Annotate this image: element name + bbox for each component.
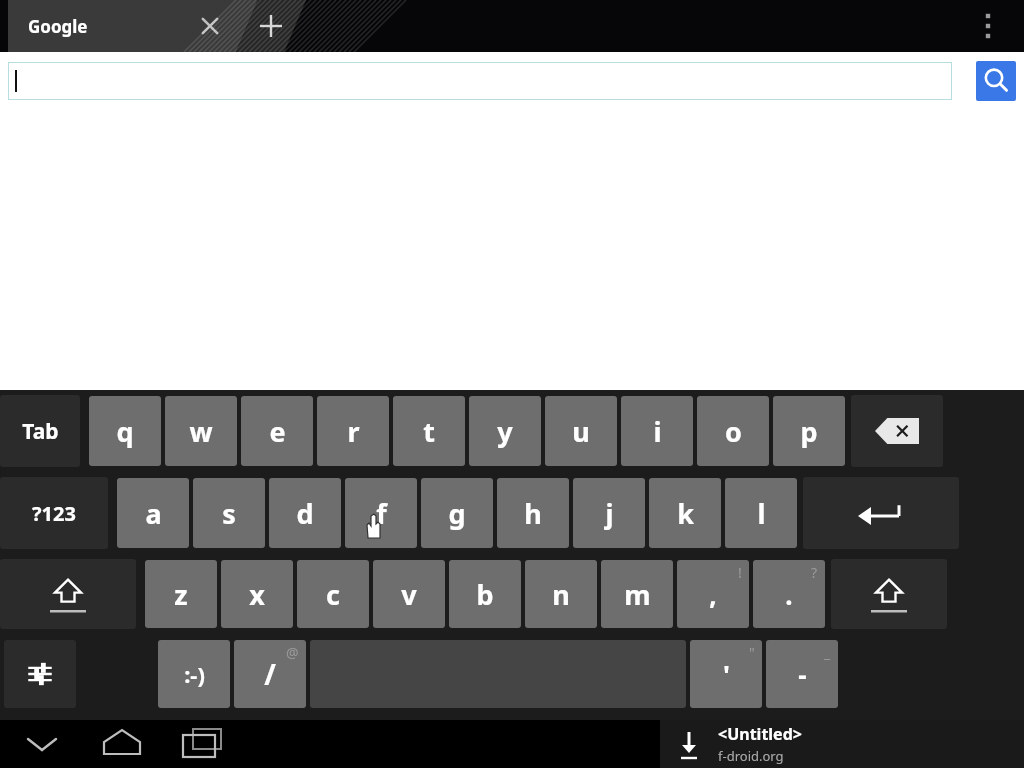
staticText: e bbox=[269, 413, 286, 450]
button[interactable]: e bbox=[241, 396, 313, 466]
staticText: b bbox=[476, 576, 494, 613]
button[interactable]: z bbox=[145, 560, 217, 628]
button[interactable]: . bbox=[753, 560, 825, 628]
button[interactable]: l bbox=[725, 478, 797, 548]
button[interactable]: m bbox=[601, 560, 673, 628]
staticText: ! bbox=[738, 563, 742, 582]
button[interactable]: t bbox=[393, 396, 465, 466]
button[interactable]: h bbox=[497, 478, 569, 548]
staticText: ? bbox=[811, 563, 818, 582]
staticText: ?123 bbox=[32, 500, 76, 527]
staticText: f-droid.org bbox=[718, 747, 784, 765]
button[interactable]: Hide keyboard bbox=[14, 722, 70, 766]
staticText: r bbox=[347, 413, 360, 450]
button[interactable]: Close tab bbox=[192, 8, 228, 44]
staticText: d bbox=[296, 495, 314, 532]
button[interactable]: <Untitled> bbox=[660, 720, 1024, 768]
button[interactable]: Google bbox=[8, 0, 236, 52]
button[interactable]: c bbox=[297, 560, 369, 628]
button[interactable]: - bbox=[766, 640, 838, 708]
button[interactable]: f bbox=[345, 478, 417, 548]
button[interactable]: o bbox=[697, 396, 769, 466]
button[interactable]: Shift bbox=[831, 559, 947, 629]
button[interactable]: k bbox=[649, 478, 721, 548]
button[interactable]: s bbox=[193, 478, 265, 548]
staticText: ' bbox=[723, 657, 730, 692]
button[interactable]: r bbox=[317, 396, 389, 466]
staticText: q bbox=[116, 413, 134, 450]
staticText: g bbox=[448, 495, 466, 532]
staticText: v bbox=[401, 576, 417, 613]
button[interactable]: Home bbox=[94, 722, 150, 766]
button[interactable]: Recent apps bbox=[174, 722, 230, 766]
button[interactable]: Backspace bbox=[851, 395, 943, 467]
staticText: z bbox=[174, 576, 188, 613]
staticText: l bbox=[757, 495, 766, 532]
button[interactable]: i bbox=[621, 396, 693, 466]
staticText: . bbox=[785, 577, 793, 612]
staticText: i bbox=[653, 413, 662, 450]
button[interactable]: / bbox=[234, 640, 306, 708]
button[interactable]: d bbox=[269, 478, 341, 548]
staticText: a bbox=[145, 495, 162, 532]
button[interactable]: ' bbox=[690, 640, 762, 708]
button[interactable] bbox=[9, 63, 951, 99]
staticText: p bbox=[800, 413, 818, 450]
staticText: j bbox=[605, 495, 614, 532]
button[interactable]: Input settings bbox=[4, 640, 76, 708]
button[interactable]: v bbox=[373, 560, 445, 628]
staticText: f bbox=[376, 495, 387, 532]
button[interactable]: y bbox=[469, 396, 541, 466]
button[interactable]: Search bbox=[976, 61, 1016, 101]
staticText: Google bbox=[28, 15, 88, 38]
button[interactable]: More options bbox=[966, 4, 1010, 48]
staticText: _ bbox=[824, 643, 831, 662]
staticText: :-) bbox=[184, 659, 205, 689]
button[interactable]: p bbox=[773, 396, 845, 466]
staticText: o bbox=[725, 413, 742, 450]
staticText: u bbox=[572, 413, 590, 450]
staticText: c bbox=[326, 576, 340, 613]
staticText: , bbox=[709, 577, 717, 612]
button[interactable]: :-) bbox=[158, 640, 230, 708]
button[interactable]: g bbox=[421, 478, 493, 548]
staticText: Tab bbox=[22, 417, 59, 446]
button[interactable]: w bbox=[165, 396, 237, 466]
staticText: t bbox=[423, 413, 435, 450]
staticText: s bbox=[222, 495, 236, 532]
button[interactable]: u bbox=[545, 396, 617, 466]
staticText: n bbox=[552, 576, 570, 613]
button[interactable]: b bbox=[449, 560, 521, 628]
staticText: @ bbox=[286, 643, 299, 662]
button[interactable]: Symbols bbox=[0, 477, 108, 549]
button[interactable]: j bbox=[573, 478, 645, 548]
staticText: / bbox=[264, 655, 276, 693]
staticText: h bbox=[524, 495, 542, 532]
staticText: k bbox=[677, 495, 694, 532]
staticText: w bbox=[189, 413, 213, 450]
button[interactable]: , bbox=[677, 560, 749, 628]
button[interactable]: Shift bbox=[0, 559, 136, 629]
button[interactable]: x bbox=[221, 560, 293, 628]
button[interactable]: Enter bbox=[803, 477, 959, 549]
staticText: x bbox=[249, 576, 265, 613]
staticText: - bbox=[798, 657, 807, 692]
button[interactable]: New tab bbox=[236, 0, 306, 52]
staticText: y bbox=[497, 413, 513, 450]
button[interactable]: Tab bbox=[0, 395, 80, 467]
staticText: " bbox=[749, 643, 755, 662]
staticText: <Untitled> bbox=[718, 723, 802, 745]
button[interactable]: q bbox=[89, 396, 161, 466]
staticText: m bbox=[624, 576, 651, 613]
button[interactable]: n bbox=[525, 560, 597, 628]
button[interactable]: a bbox=[117, 478, 189, 548]
